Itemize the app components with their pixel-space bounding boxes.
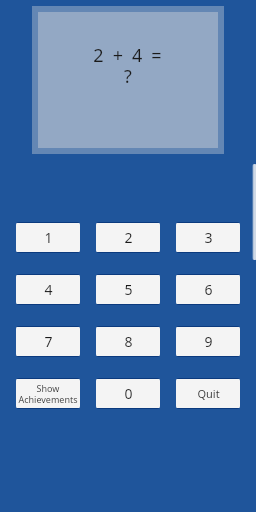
staticText: 2: [124, 228, 133, 247]
staticText: 6: [204, 280, 213, 299]
button[interactable]: 4: [16, 275, 80, 304]
button[interactable]: 0: [96, 379, 160, 408]
staticText: Show Achievements: [18, 382, 78, 405]
staticText: 7: [44, 332, 53, 351]
button[interactable]: 5: [96, 275, 160, 304]
staticText: 2 + 4 =: [93, 43, 164, 68]
staticText: 8: [124, 332, 133, 351]
staticText: ?: [124, 64, 132, 89]
button[interactable]: Quit: [176, 379, 240, 408]
button[interactable]: 8: [96, 327, 160, 356]
button[interactable]: 7: [16, 327, 80, 356]
staticText: 1: [44, 228, 53, 247]
staticText: 5: [124, 280, 133, 299]
staticText: 9: [204, 332, 213, 351]
button[interactable]: Show Achievements: [16, 379, 80, 408]
staticText: 0: [124, 384, 133, 403]
button[interactable]: 3: [176, 223, 240, 252]
button[interactable]: 9: [176, 327, 240, 356]
button[interactable]: 6: [176, 275, 240, 304]
button[interactable]: 1: [16, 223, 80, 252]
staticText: 4: [44, 280, 53, 299]
staticText: Quit: [197, 386, 220, 401]
other: Scroll position: [252, 164, 256, 260]
staticText: 3: [204, 228, 213, 247]
button[interactable]: 2: [96, 223, 160, 252]
